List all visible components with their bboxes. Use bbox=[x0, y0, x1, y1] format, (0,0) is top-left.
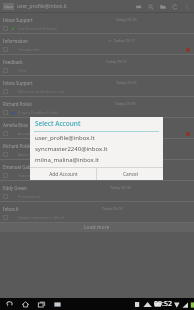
button[interactable]: Inbox Support bbox=[0, 76, 194, 97]
staticText: Inbox.lt bbox=[3, 206, 19, 212]
button[interactable]: Eddy Green bbox=[0, 181, 194, 202]
staticText: Today 09:06 bbox=[110, 185, 131, 190]
staticText: Tomorrow at 5 bbox=[18, 173, 190, 178]
button[interactable]: Emanuel Gab bbox=[0, 160, 194, 181]
staticText: Inbox Support bbox=[3, 80, 33, 86]
staticText: Inbox Support bbox=[3, 17, 33, 23]
staticText: Load more bbox=[84, 224, 110, 231]
button[interactable]: Keyboard bbox=[52, 299, 62, 309]
staticText: Amelia Ross bbox=[3, 122, 28, 128]
staticText: Welcome to the Inbox mail bbox=[18, 89, 190, 94]
button[interactable]: More options bbox=[181, 0, 193, 13]
button[interactable]: Search bbox=[145, 0, 157, 13]
staticText: Today 09:15 bbox=[116, 80, 137, 85]
button[interactable]: Inbox Support bbox=[0, 13, 194, 34]
button[interactable]: Richard Polski bbox=[0, 97, 194, 118]
button[interactable]: Compose bbox=[133, 0, 145, 13]
button[interactable]: Inbox.lt bbox=[0, 202, 194, 223]
staticText: milna_malina@inbox.lt bbox=[35, 156, 99, 164]
button[interactable]: Load more bbox=[0, 223, 194, 232]
staticText: Richard Polski bbox=[3, 101, 32, 107]
button[interactable]: syncmaster2240@inbox.lt bbox=[30, 143, 163, 154]
button[interactable]: Back bbox=[4, 299, 14, 309]
staticText: Today 09:08 bbox=[114, 164, 135, 169]
staticText: Information bbox=[3, 38, 28, 44]
staticText: Cancel bbox=[123, 171, 138, 178]
staticText: Feedback bbox=[3, 59, 23, 65]
staticText: Select Account bbox=[35, 119, 81, 128]
button[interactable]: user_profile@inbox.lt bbox=[30, 132, 163, 143]
button[interactable]: Feedback bbox=[0, 55, 194, 76]
staticText: user_profile@inbox.lt bbox=[17, 3, 67, 10]
staticText: Добро пожаловать, Max.lt bbox=[18, 215, 190, 220]
staticText: Eddy Green bbox=[3, 185, 27, 191]
staticText: Today 09:11 bbox=[106, 59, 127, 64]
button[interactable]: Recent apps bbox=[36, 299, 46, 309]
staticText: inbox bbox=[4, 4, 14, 9]
button[interactable]: Refresh bbox=[169, 0, 181, 13]
button[interactable]: Cancel bbox=[97, 168, 163, 180]
staticText: user_profile@inbox.lt bbox=[35, 134, 95, 142]
button[interactable]: Amelia Ross bbox=[0, 118, 194, 139]
staticText: About data bbox=[18, 152, 190, 157]
staticText: Today 09:26 bbox=[116, 17, 137, 22]
button[interactable]: Richard Polski bbox=[0, 139, 194, 160]
button[interactable]: Information bbox=[0, 34, 194, 55]
staticText: Add Account bbox=[49, 171, 78, 178]
button[interactable]: Add Account bbox=[30, 168, 96, 180]
button[interactable]: Folders bbox=[157, 0, 169, 13]
staticText: Richard Polski bbox=[3, 143, 32, 149]
staticText: Annual conference bbox=[18, 131, 184, 136]
staticText: Today 09:03 bbox=[102, 206, 123, 211]
staticText: Emanuel Gab bbox=[3, 164, 31, 170]
button[interactable]: Home bbox=[20, 299, 30, 309]
staticText: Today 09:15 bbox=[115, 101, 136, 106]
staticText: 09:52 bbox=[154, 299, 172, 309]
button[interactable]: milna_malina@inbox.lt bbox=[30, 154, 163, 165]
staticText: Today 09:17 bbox=[114, 38, 135, 43]
staticText: syncmaster2240@inbox.lt bbox=[35, 145, 108, 153]
